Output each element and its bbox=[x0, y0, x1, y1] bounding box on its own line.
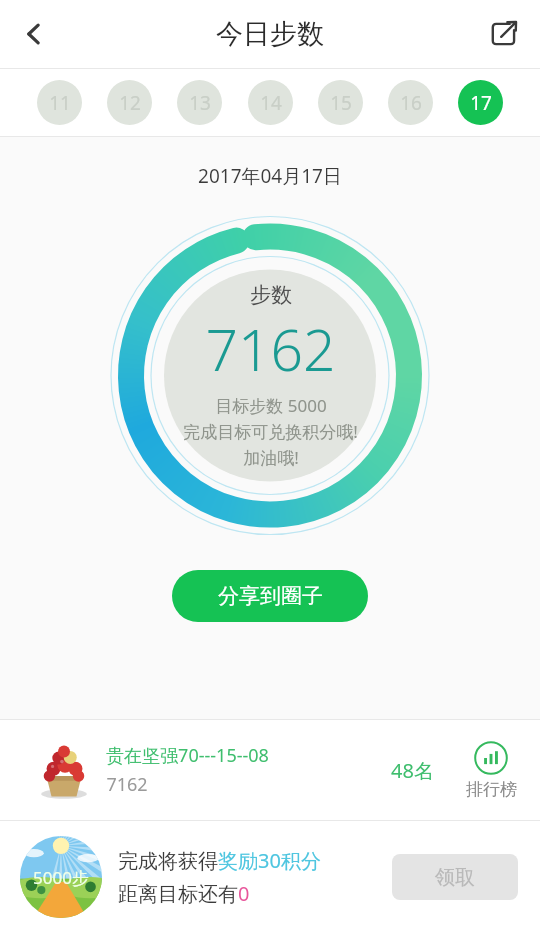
button[interactable]: Share bbox=[476, 6, 532, 62]
button[interactable]: 17 bbox=[458, 80, 503, 125]
button[interactable]: 11 bbox=[37, 80, 82, 125]
button[interactable]: 14 bbox=[248, 80, 293, 125]
button[interactable]: 贵在坚强70---15--08 bbox=[0, 720, 540, 820]
staticText: 14 bbox=[260, 90, 282, 116]
button[interactable]: 13 bbox=[177, 80, 222, 125]
button[interactable]: 12 bbox=[107, 80, 152, 125]
button[interactable]: Back bbox=[6, 6, 62, 62]
staticText: 7162 bbox=[205, 310, 336, 388]
staticText: 排行榜 bbox=[466, 779, 517, 800]
staticText: 15 bbox=[330, 90, 352, 116]
staticText: 加油哦! bbox=[243, 446, 299, 469]
staticText: 12 bbox=[119, 90, 141, 116]
staticText: 完成将获得奖励30积分 bbox=[118, 847, 321, 874]
staticText: 目标步数 5000 bbox=[215, 394, 327, 417]
staticText: 11 bbox=[49, 90, 71, 116]
staticText: 13 bbox=[189, 90, 211, 116]
staticText: 距离目标还有0 bbox=[118, 880, 250, 907]
staticText: 17 bbox=[470, 90, 492, 116]
staticText: 7162 bbox=[106, 772, 148, 797]
staticText: 完成目标可兑换积分哦! bbox=[183, 420, 358, 443]
staticText: 贵在坚强70---15--08 bbox=[106, 743, 269, 768]
staticText: 领取 bbox=[435, 865, 475, 890]
button[interactable]: 分享到圈子 bbox=[172, 570, 368, 622]
button[interactable]: 领取 bbox=[392, 854, 518, 900]
staticText: 48名 bbox=[391, 757, 434, 784]
staticText: 2017年04月17日 bbox=[198, 163, 342, 189]
staticText: 今日步数 bbox=[216, 17, 324, 51]
button[interactable]: 15 bbox=[318, 80, 363, 125]
staticText: 步数 bbox=[250, 282, 292, 308]
staticText: 分享到圈子 bbox=[218, 583, 323, 609]
staticText: 16 bbox=[400, 90, 422, 116]
button[interactable]: 16 bbox=[388, 80, 433, 125]
staticText: 5000步 bbox=[33, 866, 89, 889]
